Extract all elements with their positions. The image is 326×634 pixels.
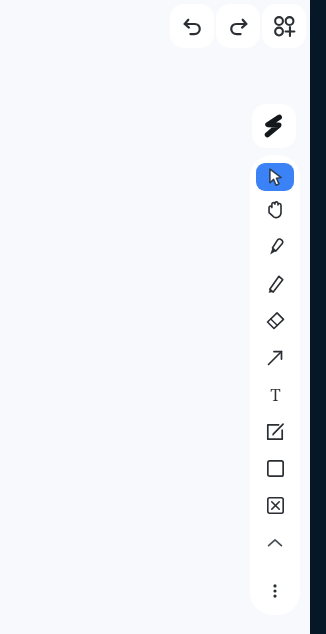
button[interactable]: Pan / hand tool <box>250 191 300 228</box>
button[interactable]: Pencil <box>250 265 300 302</box>
button[interactable]: Eraser <box>250 302 300 339</box>
button[interactable]: Ink / scribble <box>252 104 296 148</box>
button[interactable]: Redo <box>216 4 260 48</box>
button[interactable]: Delete shape <box>250 487 300 524</box>
button[interactable]: Add element <box>262 4 306 48</box>
button[interactable]: Rectangle <box>250 450 300 487</box>
button[interactable]: Arrow <box>250 339 300 376</box>
button[interactable]: Collapse <box>250 524 300 561</box>
button[interactable]: Text <box>250 376 300 413</box>
staticText: T <box>270 383 281 406</box>
button[interactable]: More options <box>250 573 300 609</box>
button[interactable]: Select tool <box>256 163 294 191</box>
button[interactable]: Undo <box>170 4 214 48</box>
button[interactable]: Note <box>250 413 300 450</box>
button[interactable]: Highlighter <box>250 228 300 265</box>
